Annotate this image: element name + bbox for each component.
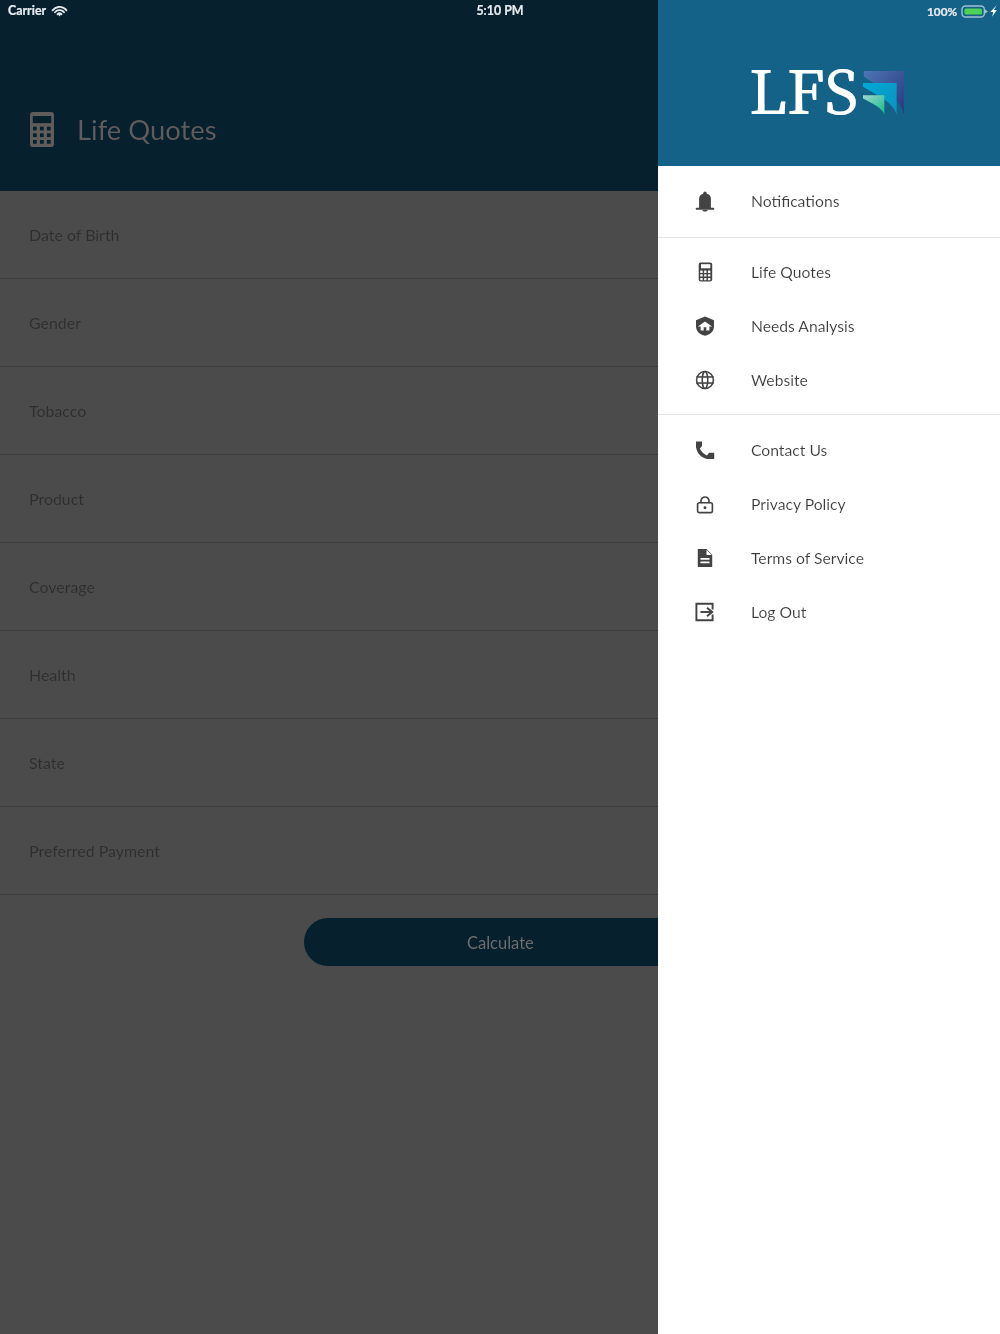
other: Needs Analysis (695, 316, 715, 336)
button[interactable]: Needs Analysis (658, 299, 1000, 353)
staticText: Coverage (29, 577, 95, 596)
staticText: 5:10 PM (0, 3, 1000, 18)
other: Notifications (695, 192, 715, 212)
button[interactable]: State (0, 719, 1000, 807)
button[interactable]: Coverage (0, 543, 1000, 631)
button[interactable]: Log Out (658, 585, 1000, 639)
staticText: LFS (749, 46, 859, 136)
staticText: Website (751, 371, 808, 390)
button[interactable]: Contact Us (658, 423, 1000, 477)
staticText: Calculate (467, 933, 534, 953)
button[interactable]: Health (0, 631, 1000, 719)
staticText: Product (29, 489, 85, 508)
staticText: Gender (29, 313, 81, 332)
button[interactable]: Calculate (304, 918, 696, 966)
other: Terms of Service (695, 548, 715, 568)
staticText: Contact Us (751, 441, 828, 460)
staticText: 100% (927, 4, 958, 18)
staticText: Life Quotes (751, 263, 831, 282)
staticText: Notifications (751, 192, 840, 211)
staticText: Terms of Service (751, 549, 864, 568)
staticText: Needs Analysis (751, 317, 855, 336)
staticText: Health (29, 665, 76, 684)
button[interactable]: Website (658, 353, 1000, 407)
staticText: Preferred Payment (29, 841, 160, 860)
staticText: State (29, 753, 65, 772)
button[interactable]: Preferred Payment (0, 807, 1000, 895)
other: Log Out (695, 602, 715, 622)
button[interactable]: Gender (0, 279, 1000, 367)
button[interactable]: Life Quotes (658, 245, 1000, 299)
staticText: Log Out (751, 603, 807, 622)
button[interactable]: Product (0, 455, 1000, 543)
other: Website (695, 370, 715, 390)
staticText: Tobacco (29, 401, 87, 420)
other: Contact Us (695, 440, 715, 460)
button[interactable]: Privacy Policy (658, 477, 1000, 531)
staticText: Carrier (8, 3, 47, 18)
other: Privacy Policy (695, 494, 715, 514)
button[interactable]: Terms of Service (658, 531, 1000, 585)
staticText: Life Quotes (77, 113, 217, 146)
button[interactable]: Date of Birth (0, 191, 1000, 279)
other: Life Quotes (695, 262, 715, 282)
staticText: Privacy Policy (751, 495, 846, 514)
staticText: Date of Birth (29, 225, 120, 244)
button[interactable]: Notifications (658, 166, 1000, 237)
button[interactable]: Tobacco (0, 367, 1000, 455)
